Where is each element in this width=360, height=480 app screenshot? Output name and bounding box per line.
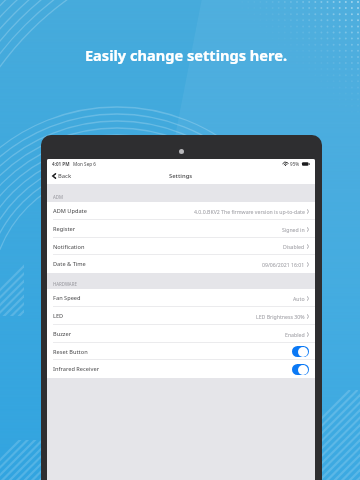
staticText: Fan Speed — [53, 294, 81, 302]
staticText: Easily change settings here. — [6, 45, 360, 65]
other: Infrared Receiver — [292, 364, 309, 375]
staticText: LED Brightness 30% — [256, 313, 305, 320]
staticText: 4.0.0.BKV2 The firmware version is up-to… — [194, 208, 305, 215]
staticText: Enabled — [285, 331, 305, 338]
button[interactable]: Reset Button — [47, 343, 315, 360]
button[interactable]: Date & Time — [47, 255, 315, 273]
staticText: Mon Sep 6 — [73, 161, 96, 167]
button[interactable]: LED — [47, 307, 315, 325]
staticText: 4:01 PM — [52, 161, 70, 167]
staticText: ADM — [53, 194, 63, 200]
staticText: LED — [53, 312, 64, 320]
other: Reset Button — [292, 346, 309, 357]
staticText: Reset Button — [53, 348, 88, 356]
staticText: Infrared Receiver — [53, 365, 100, 373]
staticText: 09/06/2021 16:01 — [262, 261, 305, 268]
button[interactable]: Register — [47, 220, 315, 238]
staticText: Auto — [293, 295, 305, 302]
button[interactable]: ADM Update — [47, 202, 315, 220]
staticText: ADM Update — [53, 207, 87, 215]
staticText: Back — [58, 172, 72, 180]
staticText: Register — [53, 225, 76, 233]
button[interactable]: Notification — [47, 238, 315, 255]
button[interactable]: Fan Speed — [47, 289, 315, 307]
staticText: HARDWARE — [53, 281, 77, 287]
staticText: Notification — [53, 243, 85, 251]
staticText: Signed in — [282, 226, 305, 233]
button[interactable]: Back — [47, 169, 76, 183]
button[interactable]: Buzzer — [47, 325, 315, 343]
button[interactable]: Infrared Receiver — [47, 360, 315, 378]
staticText: 95% — [290, 161, 300, 167]
staticText: Buzzer — [53, 330, 72, 338]
staticText: Disabled — [283, 243, 305, 250]
staticText: Settings — [169, 172, 193, 180]
staticText: Date & Time — [53, 260, 86, 268]
